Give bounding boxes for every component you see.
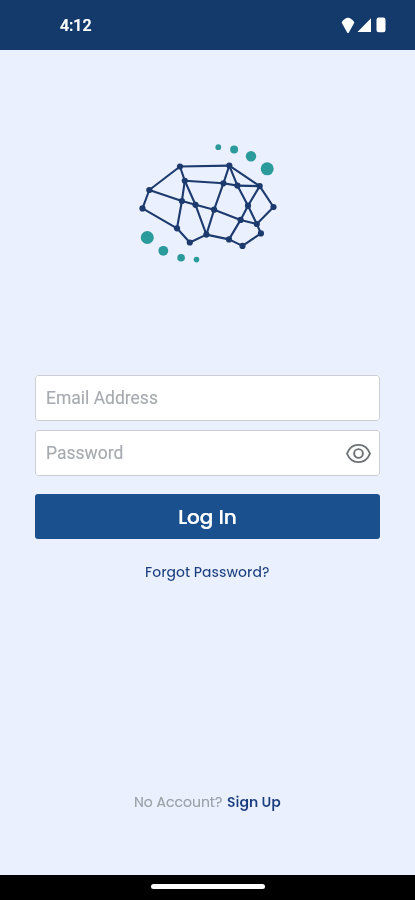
staticText: 4:12	[60, 16, 92, 35]
button[interactable]: Forgot Password?	[139, 559, 276, 585]
button[interactable]: Show password	[342, 437, 374, 469]
staticText: Log In	[178, 503, 237, 531]
staticText: Email Address	[46, 388, 158, 409]
button[interactable]: Sign Up	[227, 792, 281, 812]
button[interactable]: Home	[151, 884, 265, 889]
staticText: No Account?	[134, 792, 227, 812]
button[interactable]: Email Address	[35, 375, 380, 421]
button[interactable]: Log In	[35, 494, 380, 539]
staticText: Password	[46, 443, 124, 464]
button[interactable]: Password	[35, 430, 380, 476]
